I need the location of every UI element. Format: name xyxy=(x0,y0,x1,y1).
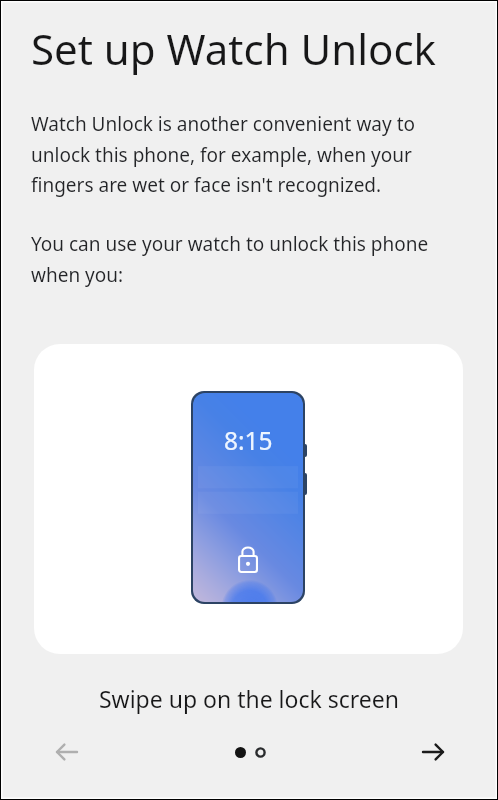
button[interactable]: Back xyxy=(45,730,89,774)
button[interactable]: Page 2 xyxy=(250,742,270,762)
staticText: Set up Watch Unlock xyxy=(31,20,437,77)
button[interactable]: Page 1, current xyxy=(230,742,250,762)
button[interactable]: Next xyxy=(411,730,455,774)
staticText: 8:15 xyxy=(224,424,273,457)
staticText: Watch Unlock is another convenient way t… xyxy=(31,111,415,198)
staticText: Swipe up on the lock screen xyxy=(0,683,498,714)
staticText: You can use your watch to unlock this ph… xyxy=(31,231,429,288)
